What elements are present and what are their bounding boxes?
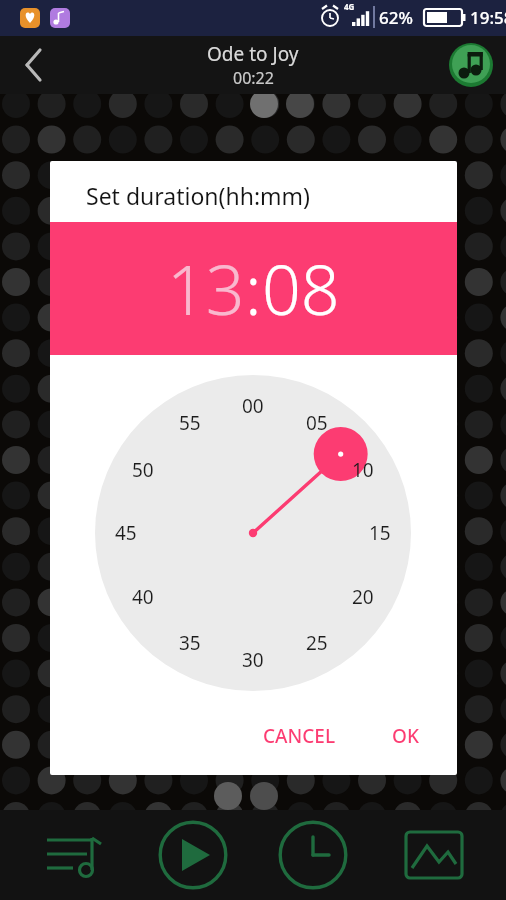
staticText: 20 [352,584,374,610]
button[interactable]: Music app [448,42,494,88]
button[interactable]: OK [376,713,435,759]
staticText: Ode to Joy [207,41,299,67]
button[interactable]: Minute picker [50,355,457,713]
staticText: 45 [115,520,137,546]
button[interactable]: 08 [262,242,340,335]
staticText: 35 [179,630,201,656]
staticText: 50 [132,457,154,483]
button[interactable]: Back [0,36,58,94]
staticText: 00:22 [233,67,274,89]
staticText: 4G [344,1,355,12]
staticText: : [245,242,262,335]
staticText: 05 [306,410,328,436]
staticText: 10 [352,457,374,483]
staticText: Set duration(hh:mm) [86,180,310,211]
button[interactable]: Play [145,810,241,900]
button[interactable]: 13 [167,242,245,335]
button[interactable]: CANCEL [247,713,352,759]
staticText: 15 [369,520,391,546]
button[interactable]: Playlist [24,810,120,900]
button[interactable]: Visualizer [386,810,482,900]
staticText: 55 [179,410,201,436]
staticText: 30 [242,647,264,673]
button[interactable]: Timer [265,810,361,900]
staticText: 25 [306,630,328,656]
staticText: 40 [132,584,154,610]
staticText: 00 [242,393,264,419]
staticText: 62% [379,6,413,29]
staticText: OK [392,723,419,749]
staticText: 19:58 [470,6,506,29]
staticText: CANCEL [263,723,336,749]
